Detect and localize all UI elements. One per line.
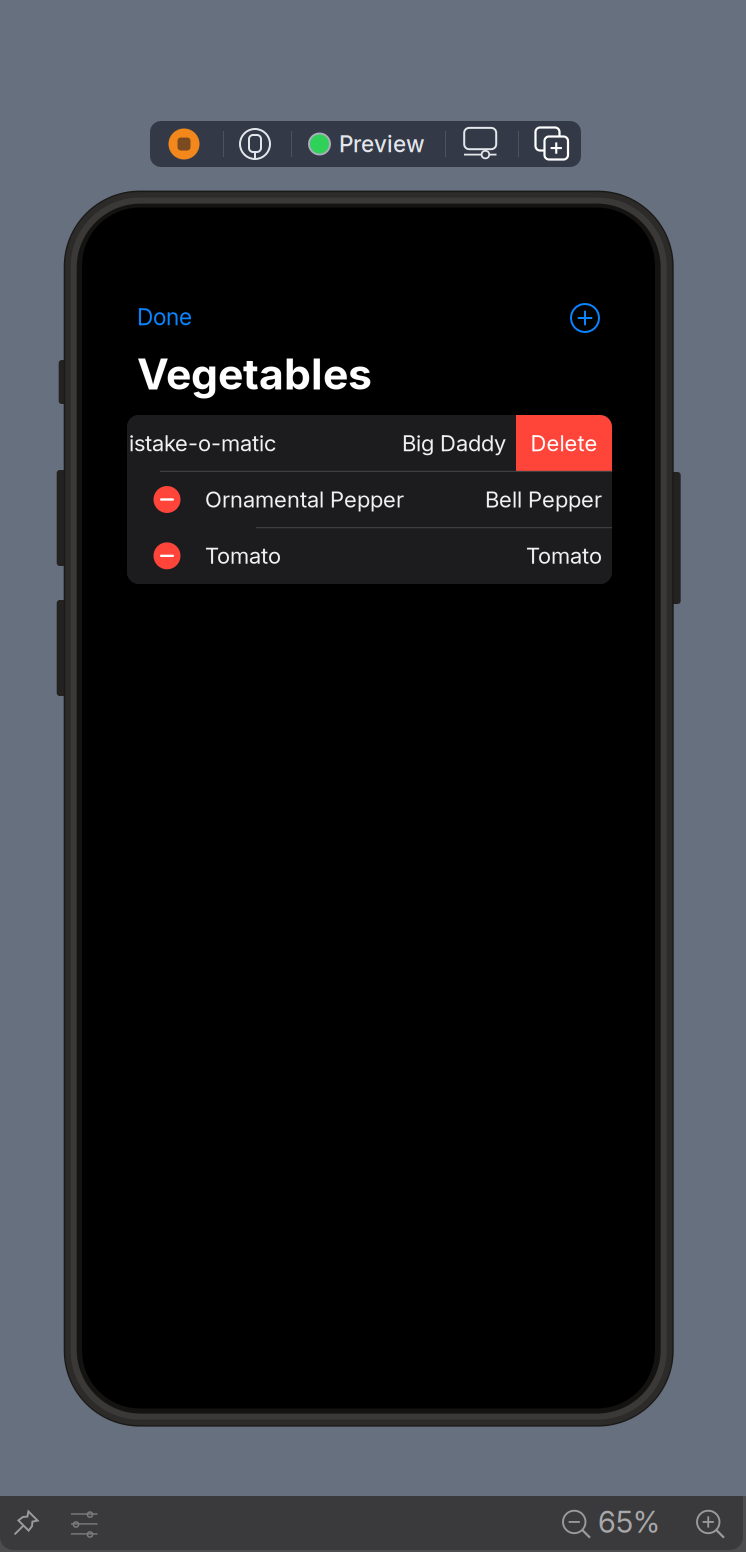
button[interactable]: Pin preview bbox=[12, 1509, 40, 1537]
staticText: Bell Pepper bbox=[485, 486, 602, 513]
button[interactable]: Run live preview bbox=[166, 126, 202, 162]
staticText: 65% bbox=[598, 1504, 660, 1540]
button[interactable]: Done bbox=[137, 299, 247, 335]
button[interactable]: Zoom out bbox=[563, 1511, 592, 1540]
button[interactable]: Preview bbox=[308, 121, 438, 167]
staticText: Vegetables bbox=[137, 348, 372, 400]
button[interactable]: Add bbox=[571, 304, 599, 332]
button[interactable]: Mistake-o-matic bbox=[31, 415, 516, 471]
button[interactable]: Zoom in bbox=[697, 1511, 726, 1540]
staticText: Big Daddy bbox=[402, 430, 506, 456]
staticText: Tomato bbox=[526, 542, 602, 569]
button[interactable]: Preview settings bbox=[71, 1512, 98, 1536]
staticText: Preview bbox=[339, 130, 425, 158]
staticText: Ornamental Pepper bbox=[205, 486, 404, 513]
button[interactable]: Ornamental Pepper bbox=[127, 471, 612, 528]
staticText: Done bbox=[137, 303, 192, 331]
staticText: Tomato bbox=[205, 542, 281, 569]
staticText: Mistake-o-matic bbox=[109, 430, 276, 456]
button[interactable]: Tomato bbox=[127, 528, 612, 584]
staticText: Delete bbox=[530, 430, 597, 456]
button[interactable]: Duplicate preview bbox=[533, 124, 573, 164]
button[interactable]: Delete bbox=[516, 415, 612, 471]
button[interactable]: Canvas device settings bbox=[462, 124, 502, 162]
button[interactable]: Preview device bbox=[237, 126, 273, 162]
